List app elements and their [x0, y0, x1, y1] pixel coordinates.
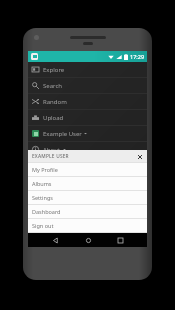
button[interactable]: Dashboard	[28, 205, 147, 218]
staticText: EXAMPLE USER	[32, 153, 69, 160]
button[interactable]: Sign out	[28, 219, 147, 232]
staticText: About	[43, 146, 61, 154]
staticText: My Profile	[32, 166, 58, 173]
button[interactable]: Settings	[28, 191, 147, 204]
button[interactable]: My Profile	[28, 163, 147, 176]
staticText: Example User	[43, 130, 82, 138]
button[interactable]: Home	[82, 234, 94, 246]
button[interactable]: Albums	[28, 177, 147, 190]
button[interactable]: Search	[28, 78, 147, 93]
staticText: Sign out	[32, 222, 54, 229]
button[interactable]: Upload	[28, 110, 147, 125]
staticText: Explore	[43, 66, 65, 74]
button[interactable]: Close	[136, 153, 143, 160]
staticText: Search	[43, 82, 62, 90]
staticText: Random	[43, 98, 67, 106]
staticText: 17:29	[130, 53, 145, 60]
staticText: Dashboard	[32, 208, 61, 215]
button[interactable]: Random	[28, 94, 147, 109]
button[interactable]: Explore	[28, 62, 147, 77]
staticText: Settings	[32, 194, 53, 201]
button[interactable]: Example User	[28, 126, 147, 141]
button[interactable]: Back	[49, 234, 61, 246]
staticText: Upload	[43, 114, 64, 122]
button[interactable]: Recents	[114, 234, 126, 246]
button[interactable]: About	[28, 142, 147, 157]
staticText: Albums	[32, 180, 52, 187]
